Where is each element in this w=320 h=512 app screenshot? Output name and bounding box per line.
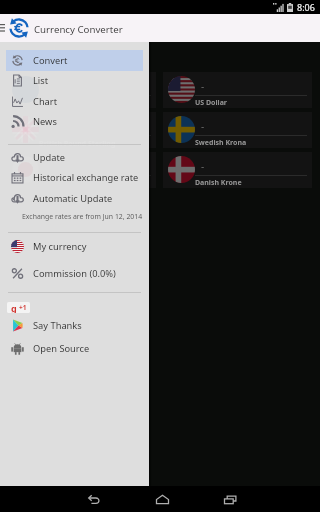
staticText: Update (33, 151, 66, 164)
staticText: Open Source (33, 342, 90, 355)
staticText: 8:06 (297, 1, 315, 13)
staticText: Historical exchange rate (33, 171, 139, 184)
button[interactable]: - (163, 112, 312, 148)
staticText: Automatic Update (33, 192, 113, 205)
staticText: Chart (33, 95, 58, 108)
staticText: US Dollar (195, 98, 227, 108)
button[interactable]: Open Source (6, 338, 143, 359)
staticText: List (33, 74, 49, 87)
button[interactable]: My currency (6, 236, 143, 257)
staticText: News (33, 115, 57, 128)
button[interactable]: Update (6, 147, 143, 168)
staticText: Swedish Krona (195, 138, 247, 148)
staticText: - (45, 79, 49, 93)
button[interactable]: Chart (6, 91, 143, 112)
staticText: - (201, 159, 205, 173)
button[interactable]: Commission (0.0%) (6, 263, 143, 284)
button[interactable]: Convert (6, 50, 143, 71)
button[interactable]: Automatic Update (6, 188, 143, 209)
staticText: - (45, 119, 49, 133)
button[interactable]: - (163, 152, 312, 188)
button[interactable]: Google plus one (7, 302, 30, 313)
staticText: British Pound Sterling (39, 139, 116, 149)
button[interactable]: List (6, 70, 143, 91)
button[interactable]: Historical exchange rate (6, 167, 143, 188)
button[interactable]: Home (138, 486, 186, 512)
staticText: Convert (33, 54, 68, 67)
button[interactable]: Recents (206, 486, 254, 512)
staticText: Euro (39, 98, 55, 108)
button[interactable]: Back (69, 486, 117, 512)
button[interactable]: - (7, 152, 156, 188)
staticText: - (201, 119, 205, 133)
staticText: My currency (33, 240, 87, 253)
staticText: Danish Krone (195, 178, 242, 188)
button[interactable]: - (7, 72, 156, 108)
button[interactable]: Open navigation drawer (0, 14, 6, 42)
button[interactable]: - (7, 112, 156, 148)
staticText: British Pound Sterling (39, 138, 116, 148)
staticText: Currency Converter (34, 23, 123, 36)
staticText: Japanese Yen (39, 178, 86, 188)
staticText: Commission (0.0%) (33, 267, 116, 280)
staticText: - (45, 159, 49, 173)
staticText: - (201, 79, 205, 93)
staticText: +1 (19, 303, 27, 312)
button[interactable]: News (6, 111, 143, 132)
button[interactable]: Say Thanks (6, 315, 143, 336)
staticText: Say Thanks (33, 319, 82, 332)
staticText: Exchange rates are from Jun 12, 2014 (22, 212, 143, 221)
button[interactable]: - (163, 72, 312, 108)
staticText: g (11, 302, 17, 313)
